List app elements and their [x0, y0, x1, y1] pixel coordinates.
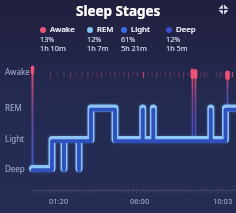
- staticText: 1h 5m: [166, 43, 188, 53]
- button[interactable]: Deep: [166, 24, 196, 55]
- staticText: Awake: [5, 66, 30, 77]
- staticText: 01:20: [49, 196, 69, 206]
- staticText: Deep: [5, 163, 25, 174]
- staticText: REM: [5, 102, 22, 113]
- staticText: 1h 7m: [87, 43, 109, 53]
- staticText: 12%: [87, 34, 102, 44]
- button[interactable]: Awake: [40, 24, 75, 55]
- button[interactable]: [218, 4, 229, 15]
- staticText: 10:03: [213, 196, 233, 206]
- staticText: Light: [131, 24, 150, 35]
- staticText: 06:00: [130, 196, 150, 206]
- staticText: Deep: [176, 24, 196, 35]
- staticText: Awake: [50, 24, 75, 35]
- staticText: 1h 10m: [40, 43, 66, 53]
- button[interactable]: Light: [121, 24, 150, 55]
- staticText: Light: [5, 133, 25, 144]
- staticText: Sleep Stages: [76, 2, 161, 20]
- button[interactable]: REM: [87, 24, 114, 55]
- staticText: 12%: [166, 34, 181, 44]
- staticText: 61%: [121, 34, 136, 44]
- staticText: 13%: [40, 34, 55, 44]
- staticText: 5h 21m: [121, 43, 147, 53]
- staticText: REM: [97, 24, 114, 35]
